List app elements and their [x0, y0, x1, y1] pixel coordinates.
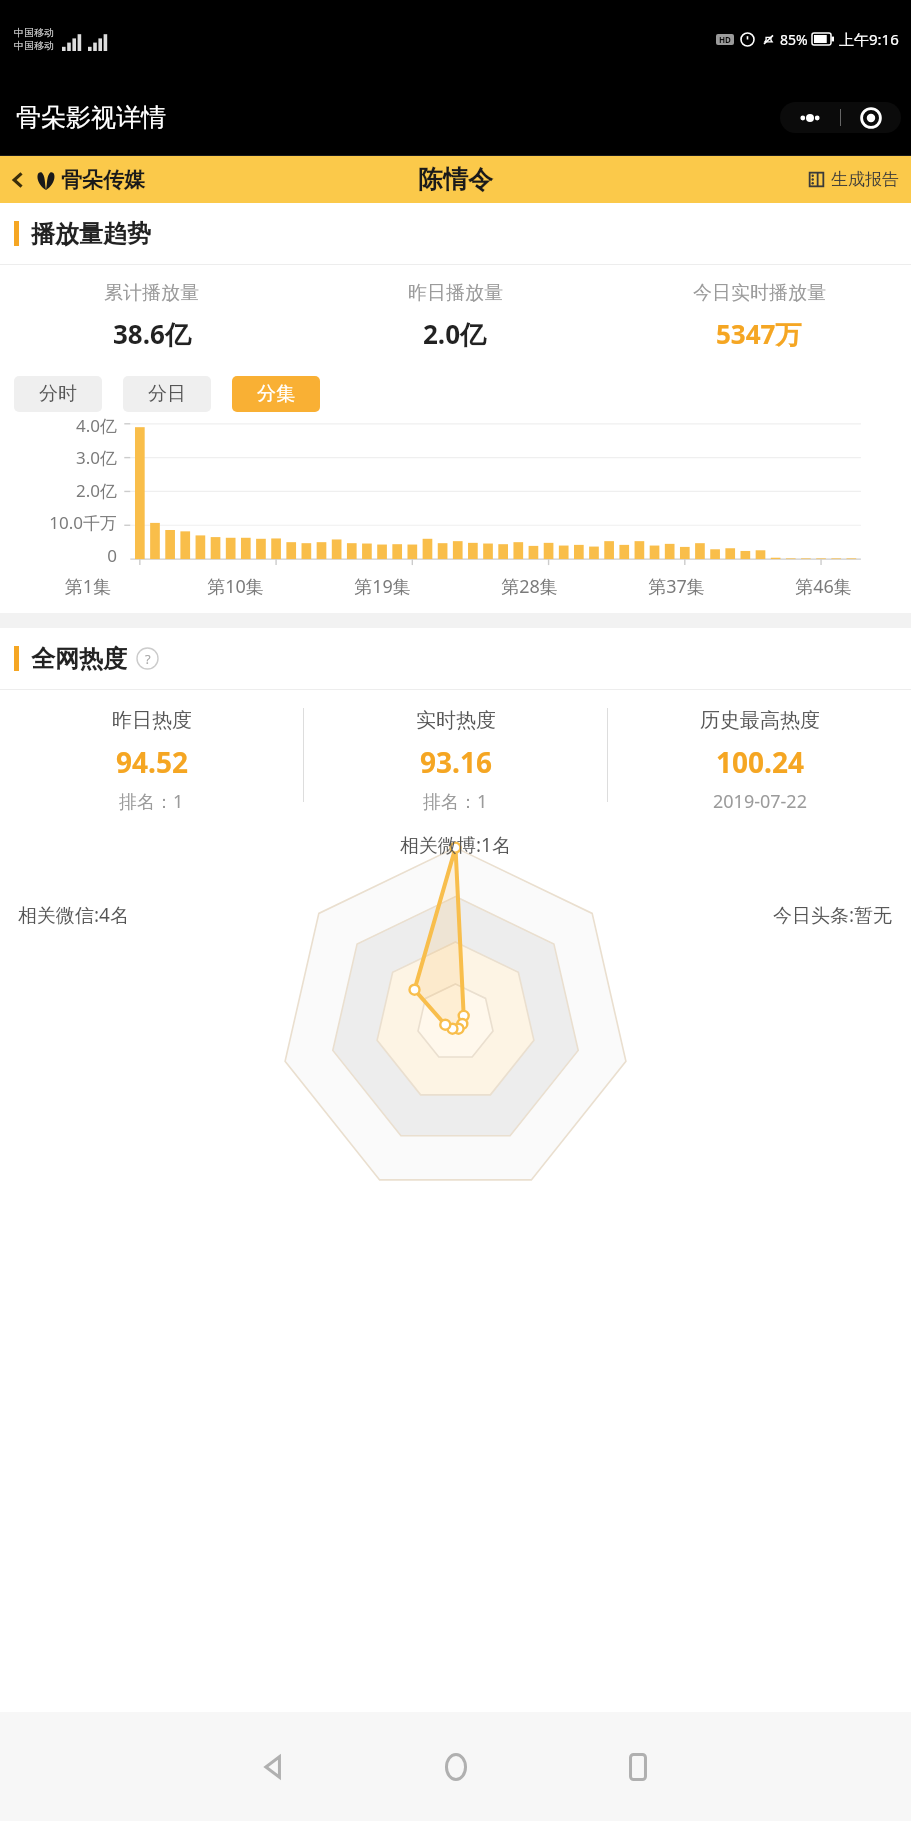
- staticText: 第19集: [309, 574, 456, 599]
- button[interactable]: 分集: [232, 376, 320, 412]
- button[interactable]: 生成报告: [807, 169, 899, 190]
- staticText: 第10集: [162, 574, 309, 599]
- button[interactable]: Close: [841, 102, 901, 133]
- button[interactable]: More: [780, 102, 840, 133]
- staticText: 2019-07-22: [713, 789, 807, 814]
- staticText: 分时: [39, 382, 77, 406]
- staticText: 10.0千万: [0, 511, 117, 534]
- staticText: HD: [719, 34, 731, 45]
- button[interactable]: Help: [136, 647, 159, 670]
- button[interactable]: Home: [365, 1712, 547, 1821]
- staticText: 生成报告: [831, 169, 899, 190]
- staticText: 排名：1: [119, 789, 184, 814]
- staticText: 分集: [257, 382, 295, 406]
- staticText: 昨日热度: [112, 708, 192, 733]
- staticText: 93.16: [420, 743, 492, 781]
- staticText: 3.0亿: [0, 446, 117, 469]
- staticText: 第37集: [603, 574, 750, 599]
- staticText: 中国移动: [14, 26, 54, 39]
- staticText: 陈情令: [418, 164, 493, 195]
- staticText: 第1集: [14, 574, 162, 599]
- other: Back: [10, 169, 26, 191]
- button[interactable]: Recents: [547, 1712, 729, 1821]
- staticText: 分日: [148, 382, 186, 406]
- staticText: 昨日播放量: [408, 281, 503, 305]
- staticText: 94.52: [116, 743, 188, 781]
- staticText: 85%: [780, 30, 808, 49]
- button[interactable]: 分日: [123, 376, 211, 412]
- staticText: 排名：1: [423, 789, 488, 814]
- staticText: 第46集: [750, 574, 897, 599]
- button[interactable]: Back: [6, 167, 149, 193]
- staticText: 播放量趋势: [31, 219, 151, 249]
- staticText: 5347万: [716, 316, 802, 352]
- button[interactable]: 分时: [14, 376, 102, 412]
- staticText: 38.6亿: [113, 316, 191, 352]
- staticText: 相关微博:1名: [400, 832, 511, 858]
- staticText: 第28集: [456, 574, 603, 599]
- staticText: 今日实时播放量: [693, 281, 826, 305]
- staticText: 历史最高热度: [700, 708, 820, 733]
- staticText: 上午9:16: [839, 29, 899, 49]
- staticText: 4.0亿: [0, 414, 117, 437]
- staticText: 相关微信:4名: [18, 902, 129, 928]
- button[interactable]: Back: [183, 1712, 365, 1821]
- staticText: 全网热度: [31, 644, 127, 674]
- staticText: ?: [145, 650, 151, 668]
- staticText: 100.24: [716, 743, 804, 781]
- staticText: 2.0亿: [423, 316, 487, 352]
- staticText: 2.0亿: [0, 479, 117, 502]
- staticText: 0: [0, 544, 117, 562]
- staticText: 今日头条:暂无: [773, 902, 893, 928]
- staticText: 骨朵影视详情: [16, 102, 166, 133]
- staticText: 累计播放量: [104, 281, 199, 305]
- staticText: 骨朵传媒: [61, 167, 145, 193]
- staticText: 中国移动: [14, 39, 54, 52]
- staticText: 实时热度: [416, 708, 496, 733]
